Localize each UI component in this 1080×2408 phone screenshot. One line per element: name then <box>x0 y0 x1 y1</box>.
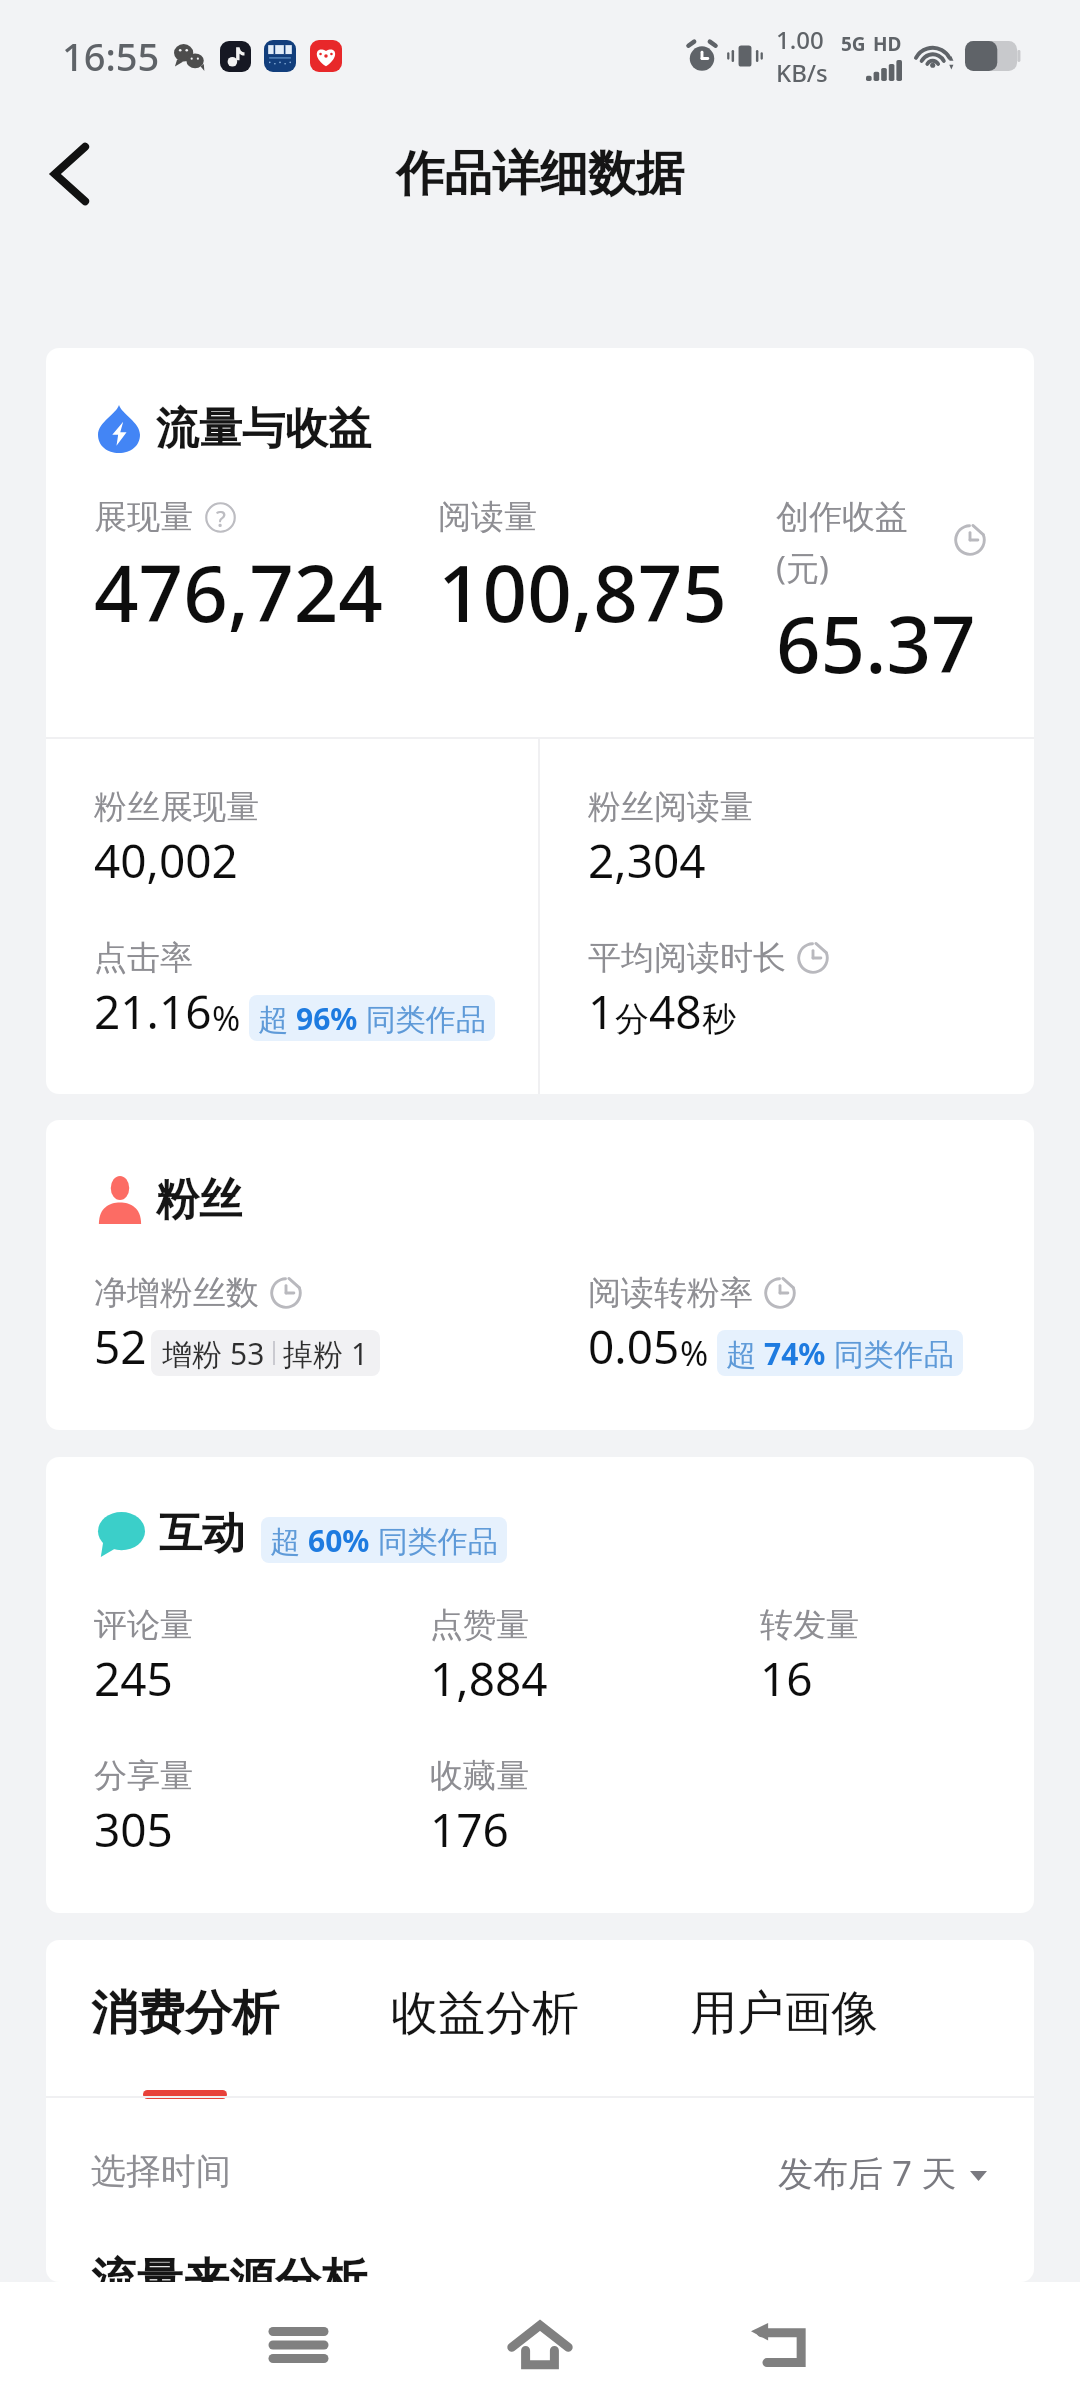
staticText: 同类作品 <box>358 998 486 1039</box>
staticText: 48 <box>649 980 702 1043</box>
staticText: 流量来源分析 <box>91 2252 367 2282</box>
staticText: 净增粉丝数 <box>94 1272 259 1314</box>
staticText: 245 <box>94 1647 173 1710</box>
staticText: 1 <box>588 980 615 1043</box>
staticText: 176 <box>430 1798 509 1861</box>
staticText: 点击率 <box>94 937 193 979</box>
staticText: 16:55 <box>62 30 160 82</box>
staticText: 53 <box>230 1333 265 1374</box>
staticText: 52 <box>94 1315 147 1378</box>
staticText: 发布后 7 天 <box>778 2149 957 2197</box>
staticText: 转发量 <box>760 1604 859 1646</box>
staticText: 消费分析 <box>91 1984 279 2043</box>
staticText: 粉丝展现量 <box>94 786 259 828</box>
staticText: 收藏量 <box>430 1755 529 1797</box>
staticText: 1.00 <box>776 23 824 56</box>
staticText: HD <box>873 31 902 57</box>
staticText: KB/s <box>776 56 828 89</box>
staticText: 阅读量 <box>438 496 537 538</box>
staticText: 用户画像 <box>690 1984 878 2043</box>
staticText: 秒 <box>702 998 736 1041</box>
staticText: 粉丝阅读量 <box>588 786 753 828</box>
staticText: 476,724 <box>94 539 383 645</box>
button[interactable]: Recents <box>243 2300 353 2390</box>
staticText: 增粉 <box>162 1333 230 1374</box>
staticText: 分享量 <box>94 1755 193 1797</box>
staticText: ? <box>216 503 226 533</box>
staticText: 同类作品 <box>370 1520 498 1561</box>
button[interactable]: Home <box>485 2300 595 2390</box>
staticText: 评论量 <box>94 1604 193 1646</box>
staticText: 互动 <box>159 1507 245 1561</box>
staticText: 21.16 <box>94 980 212 1043</box>
button[interactable]: 收益分析 <box>391 1984 579 2043</box>
staticText: 1 <box>351 1333 369 1374</box>
staticText: 96% <box>296 998 358 1039</box>
staticText: 同类作品 <box>826 1333 954 1374</box>
staticText: 展现量 <box>94 496 193 538</box>
button[interactable]: 消费分析 <box>91 1984 279 2043</box>
staticText: 流量与收益 <box>156 402 371 456</box>
staticText: 分 <box>615 998 649 1041</box>
button[interactable]: 选择时间 <box>46 2149 1034 2239</box>
staticText: (元) <box>776 545 829 590</box>
staticText: 收益分析 <box>391 1984 579 2043</box>
staticText: 超 <box>258 998 296 1039</box>
staticText: % <box>680 1330 709 1376</box>
staticText: 60% <box>308 1520 370 1561</box>
staticText: 超 <box>726 1333 764 1374</box>
staticText: 创作收益 <box>776 496 908 538</box>
staticText: 选择时间 <box>91 2149 231 2193</box>
staticText: 5G <box>841 31 866 57</box>
staticText: 74% <box>764 1333 826 1374</box>
staticText: 作品详细数据 <box>396 144 684 204</box>
staticText: 1,884 <box>430 1647 548 1710</box>
button[interactable]: Back <box>724 2300 834 2390</box>
staticText: 粉丝 <box>156 1173 242 1227</box>
staticText: 0.05 <box>588 1315 680 1378</box>
staticText: 超 <box>270 1520 308 1561</box>
staticText: 点赞量 <box>430 1604 529 1646</box>
staticText: 2,304 <box>588 829 706 892</box>
staticText: 65.37 <box>776 590 976 696</box>
staticText: 平均阅读时长 <box>588 937 786 979</box>
staticText: 16 <box>760 1647 813 1710</box>
staticText: 阅读转粉率 <box>588 1272 753 1314</box>
staticText: 掉粉 <box>283 1333 351 1374</box>
staticText: 100,875 <box>438 539 727 645</box>
staticText: 40,002 <box>94 829 238 892</box>
button[interactable]: 用户画像 <box>690 1984 878 2043</box>
staticText: % <box>212 995 241 1041</box>
button[interactable]: Back <box>22 126 118 222</box>
staticText: 305 <box>94 1798 173 1861</box>
